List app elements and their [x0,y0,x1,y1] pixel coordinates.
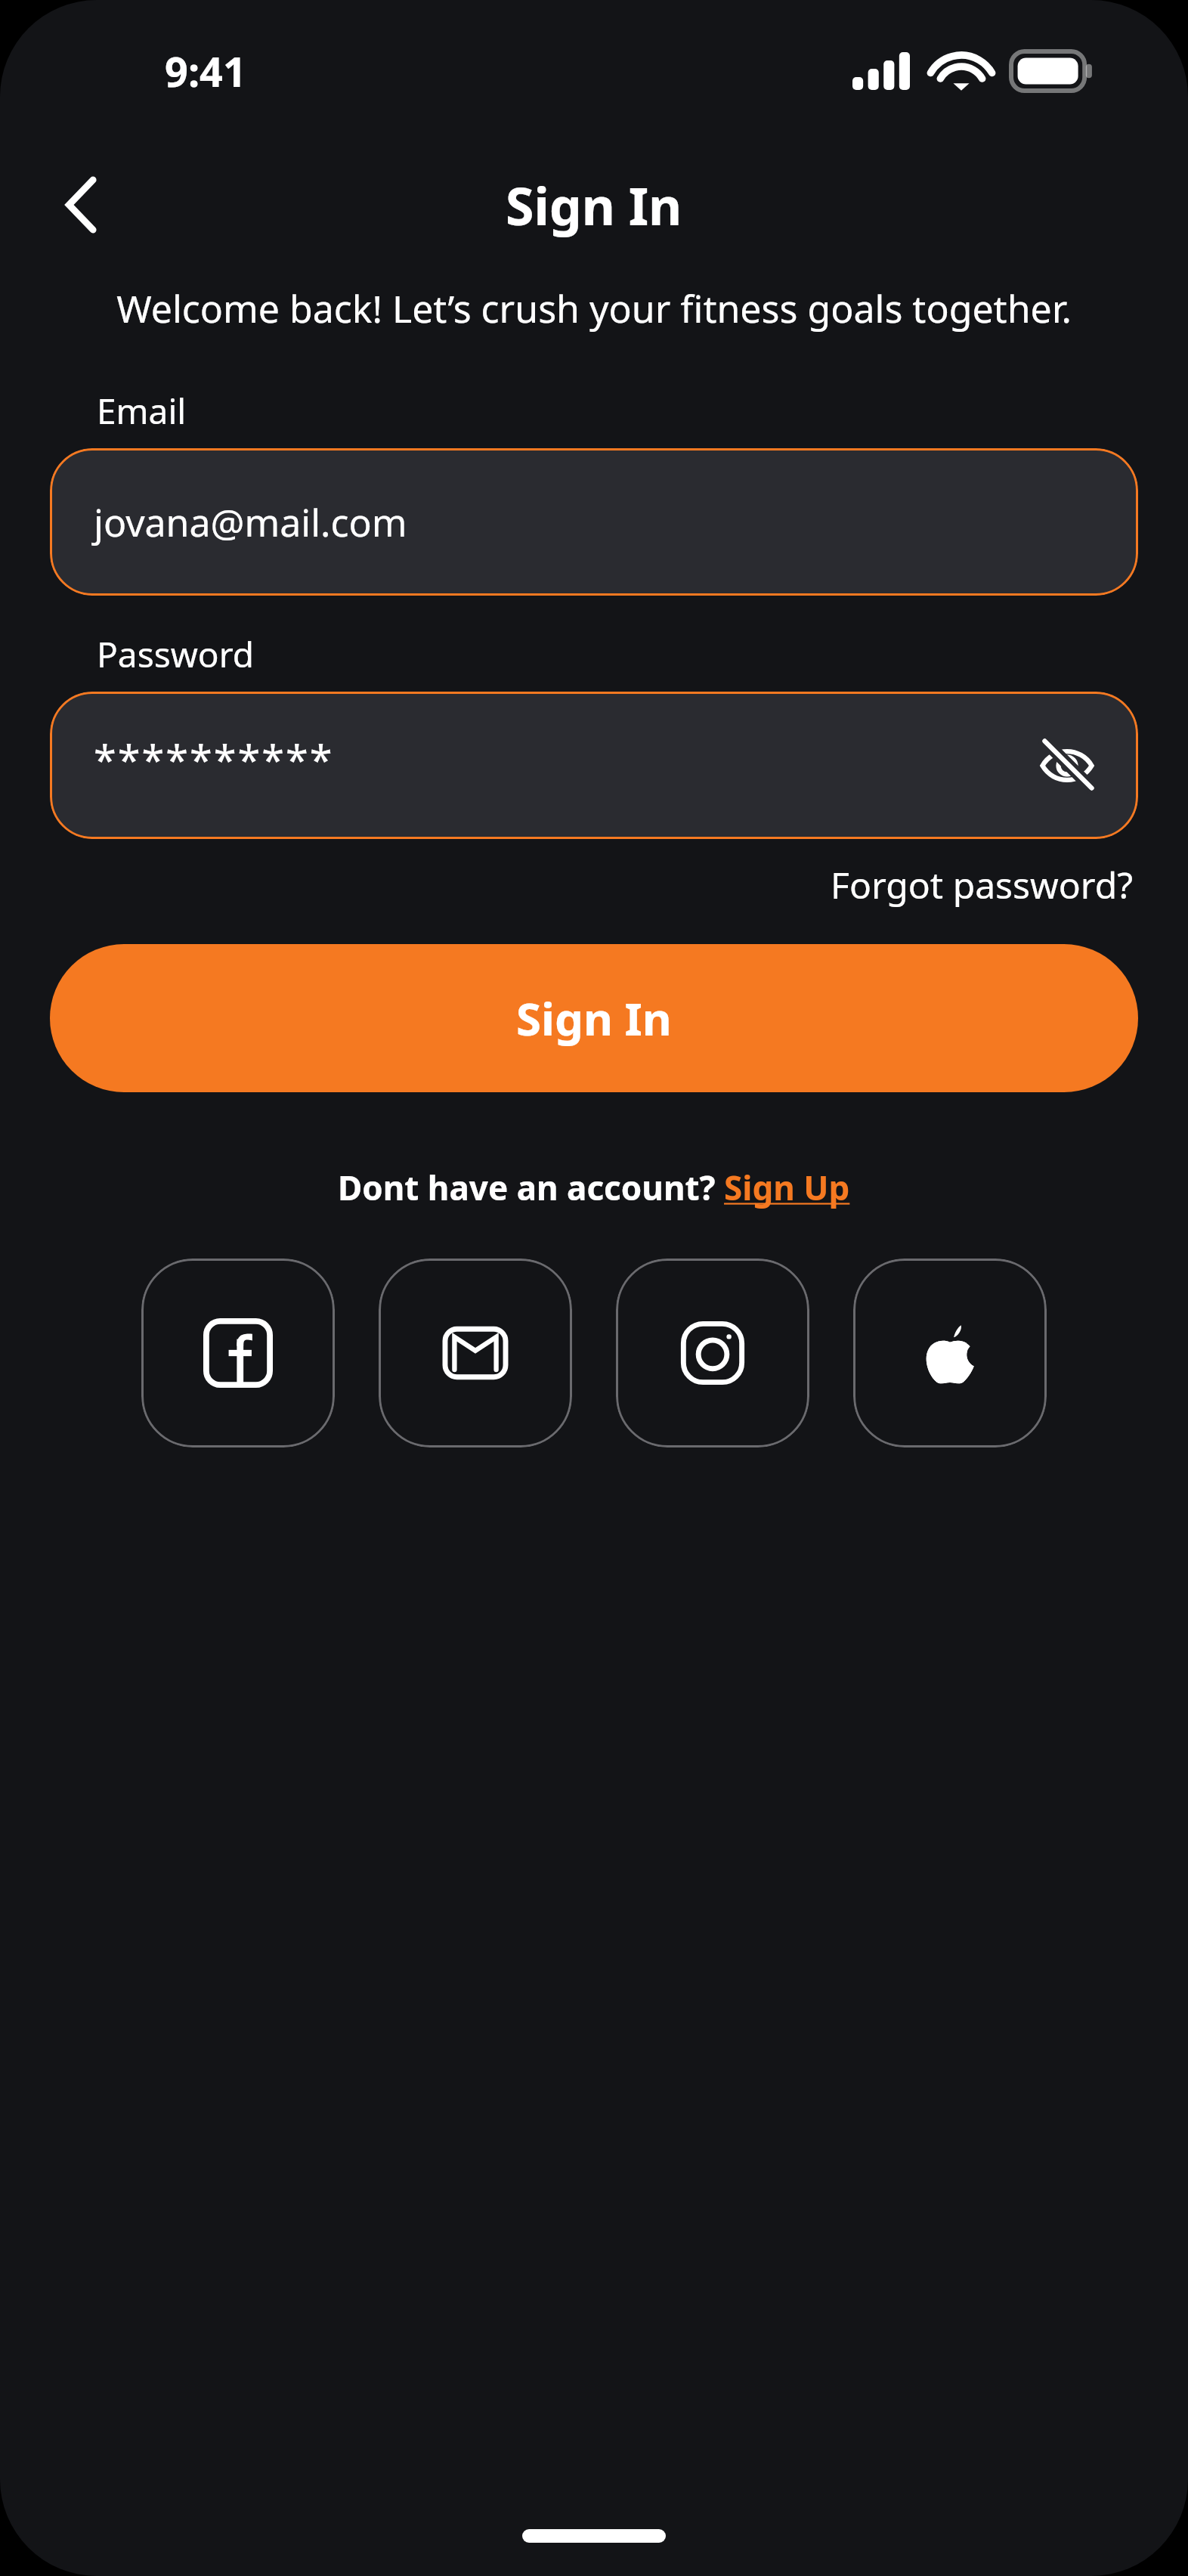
staticText: Email [97,387,187,435]
staticText: Forgot password? [831,860,1134,909]
button[interactable]: Sign in with Gmail [379,1259,572,1447]
button[interactable]: Sign In [50,944,1138,1092]
button[interactable]: Forgot password? [826,856,1138,914]
staticText: 9:41 [165,43,246,99]
button[interactable]: Dont have an account? Sign Up [332,1159,856,1216]
button[interactable]: Sign in with Apple [853,1259,1047,1447]
staticText: Sign In [506,170,682,240]
button[interactable]: Back [41,163,124,246]
staticText: Sign In [516,987,672,1049]
staticText: Welcome back! Let’s crush your fitness g… [50,283,1138,334]
button[interactable]: jovana@mail.com [50,448,1138,596]
staticText: ********** [94,732,334,788]
button[interactable]: Sign in with Facebook [141,1259,335,1447]
button[interactable]: Hide password [1026,725,1108,807]
staticText: Password [97,630,255,678]
button[interactable]: Sign in with Instagram [616,1259,809,1447]
staticText: jovana@mail.com [94,497,407,548]
staticText: Dont have an account? Sign Up [338,1165,850,1210]
button[interactable]: ********** [50,692,1138,839]
